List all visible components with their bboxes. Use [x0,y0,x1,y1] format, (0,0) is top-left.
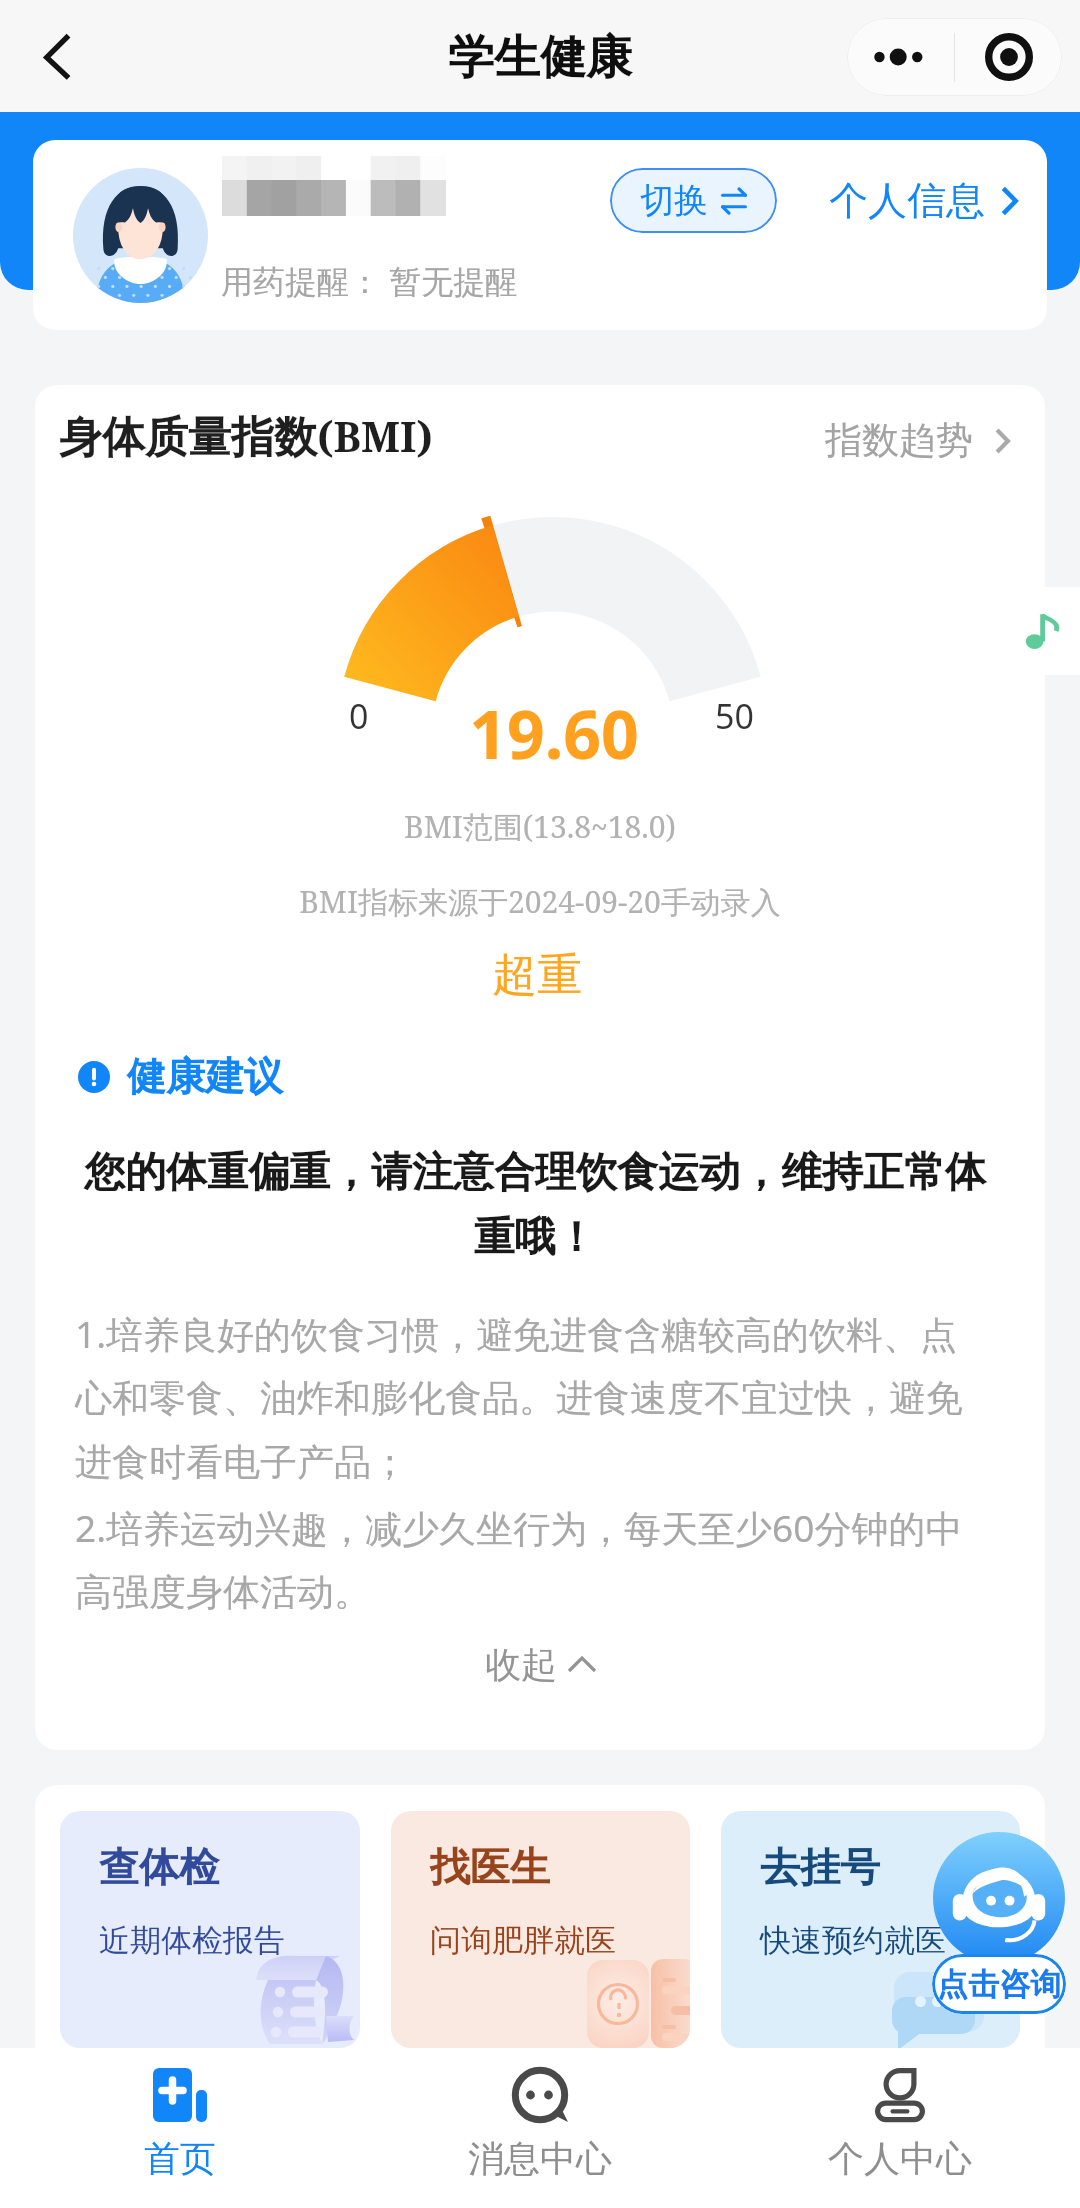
button[interactable]: 找医生 [391,1811,690,2048]
staticText: 个人信息 [829,176,985,225]
staticText: 消息中心 [468,2136,612,2181]
staticText: 学生健康 [448,29,632,87]
staticText: 健康建议 [127,1052,283,1101]
button[interactable]: More options [847,18,954,96]
button[interactable]: 首页 [0,2048,360,2208]
button[interactable]: 用药提醒： 暂无提醒 [33,140,1047,330]
staticText: 您的体重偏重，请注意合理饮食运动，维持正常体重哦！ [75,1147,995,1263]
button[interactable]: Music [1002,587,1080,675]
button[interactable]: 个人信息 [829,176,1018,225]
staticText: 去挂号 [760,1842,880,1892]
button[interactable]: 切换 [610,168,777,233]
button[interactable]: 消息中心 [360,2048,720,2208]
staticText: BMI范围(13.8~18.0) [35,806,1045,847]
staticText: 收起 [485,1642,557,1687]
button[interactable]: 去挂号 [721,1811,1020,2048]
staticText: (BMI) [317,408,433,464]
staticText: 0 [349,693,369,739]
staticText: 点击咨询 [937,1965,1061,2004]
staticText: 查体检 [99,1842,219,1892]
staticText: 问询肥胖就医 [430,1921,616,1960]
staticText: 近期体检报告 [99,1921,285,1960]
staticText: 身体质量指数 [59,411,317,465]
button[interactable]: Consult customer service [932,1832,1066,2014]
button[interactable]: Back [18,18,94,94]
staticText: 指数趋势 [825,417,973,464]
button[interactable]: 查体检 [60,1811,360,2048]
button[interactable]: 个人中心 [720,2048,1080,2208]
staticText: 个人中心 [828,2136,972,2181]
staticText: 找医生 [430,1842,550,1892]
button[interactable]: 指数趋势 [821,413,1014,468]
staticText: 快速预约就医 [760,1921,946,1960]
staticText: 超重 [35,947,1042,1004]
staticText: 切换 [640,179,708,222]
staticText: 1.培养良好的饮食习惯，避免进食含糖较高的饮料、点心和零食、油炸和膨化食品。进食… [75,1308,978,1616]
staticText: 50 [715,693,754,739]
staticText: 19.60 [49,688,1045,778]
button[interactable]: 收起 [35,1642,1045,1687]
staticText: BMI指标来源于2024-09-20手动录入 [35,881,1045,922]
staticText: 用药提醒： 暂无提醒 [221,259,518,303]
staticText: 首页 [144,2136,216,2181]
button[interactable]: Close mini program [955,18,1062,96]
